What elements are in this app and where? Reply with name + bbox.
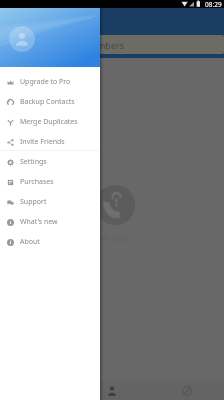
button[interactable]: Backup Contacts xyxy=(0,92,100,112)
button[interactable]: Settings xyxy=(0,152,100,172)
staticText: Upgrade to Pro xyxy=(20,77,71,87)
button[interactable]: Merge Duplicates xyxy=(0,112,100,132)
staticText: Purchases xyxy=(20,177,54,187)
button[interactable]: About xyxy=(0,232,100,252)
button[interactable]: Invite Friends xyxy=(0,132,100,152)
button[interactable]: Contacts xyxy=(74,381,149,400)
staticText: About xyxy=(20,237,40,247)
button[interactable]: Search numbers xyxy=(3,35,224,54)
button[interactable]: Upgrade to Pro xyxy=(0,72,100,92)
button[interactable]: What's new xyxy=(0,212,100,232)
staticText: Merge Duplicates xyxy=(20,117,78,127)
staticText: 08:29 xyxy=(205,0,222,8)
button[interactable]: Support xyxy=(0,192,100,212)
staticText: No items xyxy=(100,234,130,244)
staticText: What's new xyxy=(20,217,58,227)
staticText: Settings xyxy=(20,157,47,167)
button[interactable]: Purchases xyxy=(0,172,100,192)
staticText: Invite Friends xyxy=(20,137,65,147)
staticText: Search numbers xyxy=(55,39,125,51)
staticText: Backup Contacts xyxy=(20,97,75,107)
staticText: Support xyxy=(20,197,47,207)
